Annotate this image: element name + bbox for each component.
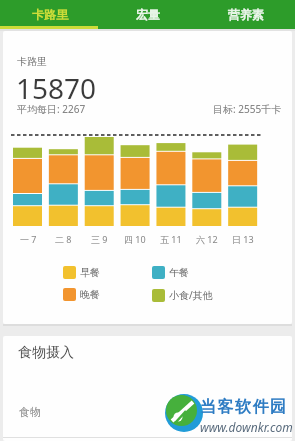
staticText: 食物 — [19, 405, 41, 419]
staticText: 午餐 — [169, 266, 189, 279]
button[interactable]: 卡路里 — [0, 0, 99, 29]
staticText: 平均每日: 2267 — [17, 102, 86, 116]
staticText: 食物摄入 — [18, 344, 74, 362]
staticText: 三 9 — [91, 233, 108, 245]
staticText: 15870 — [16, 69, 97, 107]
staticText: 五 11 — [160, 233, 182, 245]
button[interactable]: 营养素 — [197, 0, 295, 29]
staticText: 卡路里 — [17, 55, 47, 68]
staticText: 晚餐 — [80, 288, 100, 301]
staticText: 六 12 — [196, 233, 218, 245]
staticText: 早餐 — [80, 266, 100, 279]
staticText: 目标: 2555千卡 — [213, 102, 282, 116]
staticText: 四 10 — [124, 233, 146, 245]
button[interactable]: 宏量 — [99, 0, 197, 29]
staticText: 一 7 — [20, 233, 37, 245]
staticText: 营养素 — [228, 7, 264, 22]
staticText: 小食/其他 — [169, 288, 213, 302]
button[interactable]: 食物 — [19, 405, 292, 419]
staticText: 卡路里 — [32, 7, 68, 22]
staticText: 日 13 — [232, 233, 254, 245]
staticText: 宏量 — [136, 7, 160, 22]
staticText: 当客软件园 — [200, 397, 288, 417]
staticText: 二 8 — [55, 233, 72, 245]
staticText: www.downkr.com — [200, 419, 293, 435]
